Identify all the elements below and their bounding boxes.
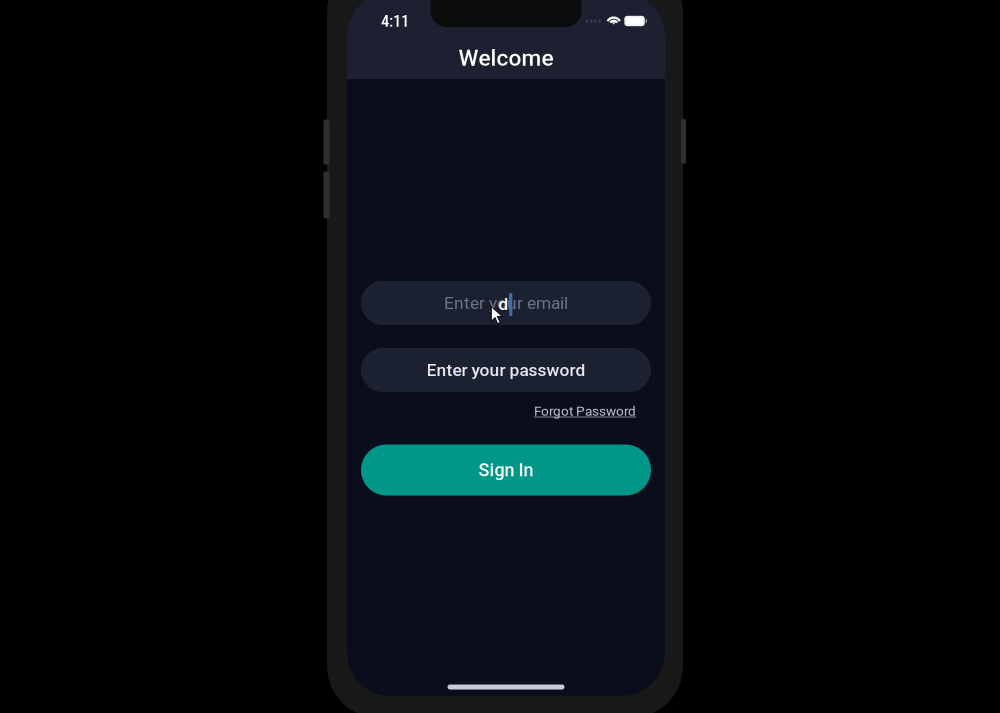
staticText: Enter your email [444,293,568,313]
staticText: d [498,294,508,314]
button[interactable]: Forgot Password [534,403,636,419]
staticText: Sign In [478,459,533,481]
button[interactable]: Enter your email [361,281,651,325]
staticText: Enter your password [426,360,585,380]
button[interactable]: Enter your password [361,348,651,392]
staticText: Welcome [458,45,553,71]
staticText: Forgot Password [534,403,636,419]
staticText: 4:11 [381,11,409,31]
button[interactable]: Sign In [361,444,651,495]
